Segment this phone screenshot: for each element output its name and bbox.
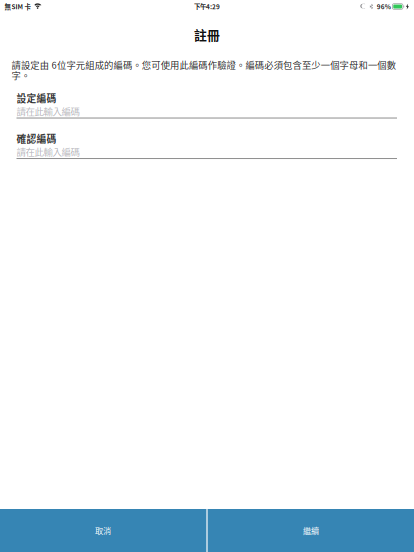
staticText: 請在此輸入編碼 [16,145,79,158]
staticText: 註冊 [194,25,220,44]
staticText: 請設定由 6位字元組成的編碼。您可使用此編碼作驗證。編碼必須包含至少一個字母和一… [11,58,396,82]
button[interactable]: 繼續 [208,509,414,552]
button[interactable]: 取消 [0,509,206,552]
staticText: 取消 [95,525,111,536]
staticText: 96% [377,2,391,11]
staticText: 無 SIM 卡 [4,2,30,11]
staticText: 下午4:29 [194,2,220,11]
staticText: 設定編碼 [16,91,56,105]
staticText: 確認編碼 [16,131,56,146]
staticText: 繼續 [303,525,319,536]
staticText: 請在此輸入編碼 [16,104,79,118]
